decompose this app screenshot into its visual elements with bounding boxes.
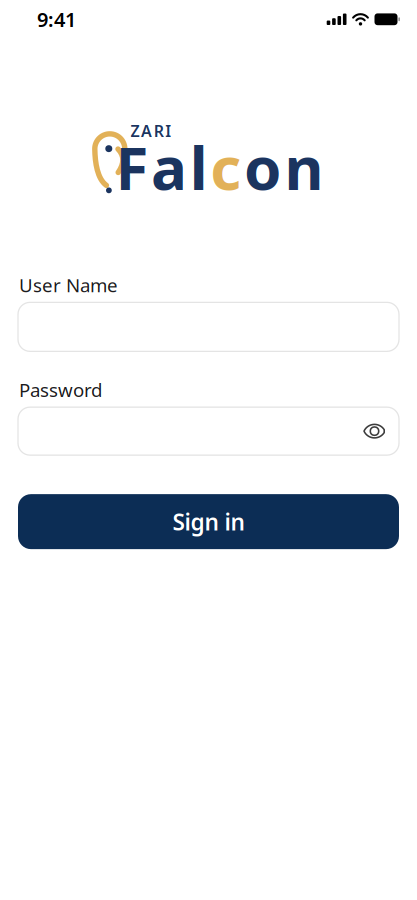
staticText: I: [165, 120, 171, 141]
staticText: User Name: [19, 273, 118, 297]
staticText: n: [284, 127, 323, 206]
staticText: o: [244, 127, 282, 206]
staticText: Z: [130, 120, 139, 141]
staticText: Password: [19, 377, 102, 402]
button[interactable]: Show password: [358, 418, 391, 444]
staticText: a: [151, 127, 187, 206]
staticText: l: [190, 127, 208, 206]
button[interactable]: Sign in: [18, 494, 399, 549]
staticText: c: [210, 127, 241, 206]
staticText: R: [154, 120, 164, 141]
staticText: F: [115, 127, 148, 206]
staticText: Sign in: [172, 507, 244, 537]
staticText: 9:41: [37, 6, 76, 33]
staticText: A: [141, 120, 152, 141]
